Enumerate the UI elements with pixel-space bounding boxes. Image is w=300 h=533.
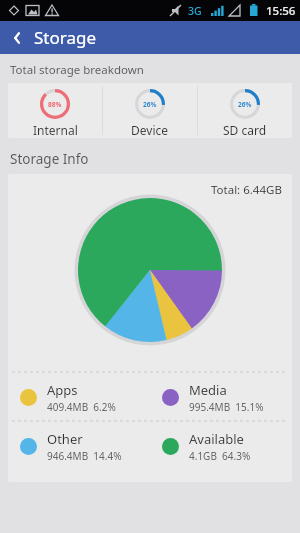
staticText: Total storage breakdown xyxy=(10,62,144,78)
staticText: SD card xyxy=(223,122,267,138)
staticText: 409.4MB 6.2% xyxy=(47,400,116,414)
staticText: 946.4MB 14.4% xyxy=(47,449,122,463)
button[interactable]: Available xyxy=(150,422,292,470)
staticText: Apps xyxy=(47,381,78,399)
staticText: Internal xyxy=(33,122,78,138)
button[interactable]: Apps xyxy=(8,373,150,421)
button[interactable]: Back xyxy=(0,21,34,54)
button[interactable]: 88% xyxy=(8,83,102,138)
staticText: 3G xyxy=(188,4,202,18)
staticText: Storage Info xyxy=(10,150,89,168)
button[interactable]: Other xyxy=(8,422,150,470)
staticText: Available xyxy=(189,430,244,448)
button[interactable]: 26% xyxy=(198,83,292,138)
staticText: Device xyxy=(131,122,169,138)
staticText: 26% xyxy=(143,100,157,109)
staticText: 15:56 xyxy=(266,3,296,19)
staticText: Storage xyxy=(34,26,97,49)
staticText: 88% xyxy=(48,100,62,109)
button[interactable]: 26% xyxy=(103,83,197,138)
staticText: 26% xyxy=(238,100,252,109)
staticText: 995.4MB 15.1% xyxy=(189,400,264,414)
staticText: Other xyxy=(47,430,83,448)
staticText: Media xyxy=(189,381,227,399)
staticText: 4.1GB 64.3% xyxy=(189,449,251,463)
staticText: Total: 6.44GB xyxy=(211,182,282,198)
button[interactable]: Media xyxy=(150,373,292,421)
